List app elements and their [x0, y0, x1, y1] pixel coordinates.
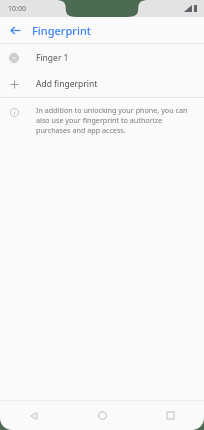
staticText: 10:00	[8, 4, 26, 14]
staticText: Finger 1	[36, 52, 69, 64]
button[interactable]: Recent apps	[136, 401, 204, 430]
button[interactable]: Back	[0, 401, 68, 430]
button[interactable]: Add fingerprint	[0, 71, 204, 97]
staticText: In addition to unlocking your phone, you…	[36, 105, 196, 135]
button[interactable]: Back	[5, 20, 25, 40]
button[interactable]: Finger 1	[0, 44, 204, 71]
button[interactable]: Home	[68, 401, 136, 430]
staticText: Fingerprint	[32, 23, 92, 38]
staticText: Add fingerprint	[36, 78, 98, 90]
